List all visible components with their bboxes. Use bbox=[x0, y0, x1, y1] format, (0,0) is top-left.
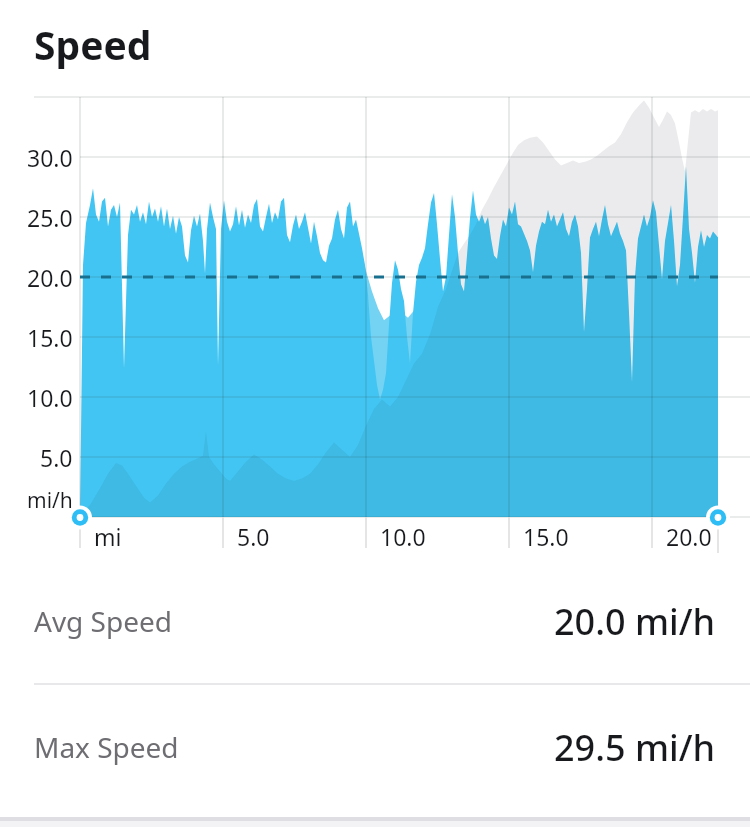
staticText: 15.0 bbox=[27, 322, 73, 352]
staticText: 15.0 bbox=[523, 521, 569, 552]
staticText: mi/h bbox=[27, 486, 73, 514]
staticText: 29.5 mi/h bbox=[554, 723, 716, 772]
staticText: 20.0 bbox=[27, 262, 73, 292]
staticText: 20.0 bbox=[666, 521, 712, 552]
staticText: 10.0 bbox=[380, 521, 426, 552]
staticText: 20.0 mi/h bbox=[554, 597, 716, 646]
button[interactable]: Avg Speed bbox=[34, 590, 716, 652]
staticText: 5.0 bbox=[40, 442, 73, 472]
staticText: 5.0 bbox=[237, 521, 270, 552]
button[interactable]: Max Speed bbox=[34, 716, 716, 778]
staticText: 30.0 bbox=[27, 142, 73, 172]
staticText: mi bbox=[94, 521, 122, 552]
staticText: Speed bbox=[34, 18, 152, 71]
staticText: 25.0 bbox=[27, 202, 73, 232]
staticText: Avg Speed bbox=[34, 602, 173, 640]
staticText: Max Speed bbox=[34, 728, 179, 766]
staticText: 10.0 bbox=[27, 382, 73, 412]
